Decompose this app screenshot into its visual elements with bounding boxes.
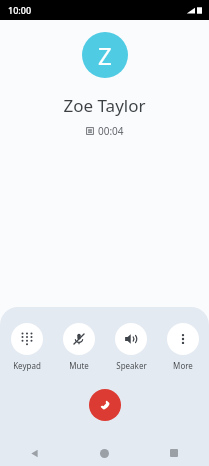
button[interactable]: Mute	[53, 321, 105, 373]
staticText: Z	[98, 39, 112, 72]
staticText: More	[173, 360, 193, 371]
button[interactable]: Back	[0, 440, 69, 466]
other: Keypad	[20, 332, 34, 346]
staticText: Keypad	[13, 360, 41, 371]
staticText: 00:04	[98, 124, 124, 138]
button[interactable]: End call	[89, 389, 121, 421]
button[interactable]: Keypad	[0, 321, 53, 373]
other: More options	[176, 332, 190, 346]
other: Mute	[72, 332, 86, 346]
staticText: Mute	[69, 360, 89, 371]
button[interactable]: Speaker	[105, 321, 157, 373]
staticText: Speaker	[116, 360, 147, 371]
other: Speaker	[124, 332, 138, 346]
staticText: 10:00	[8, 4, 32, 16]
staticText: Zoe Taylor	[63, 94, 146, 117]
button[interactable]: More options	[157, 321, 209, 373]
button[interactable]: Home	[69, 440, 139, 466]
button[interactable]: Recent apps	[139, 440, 209, 466]
